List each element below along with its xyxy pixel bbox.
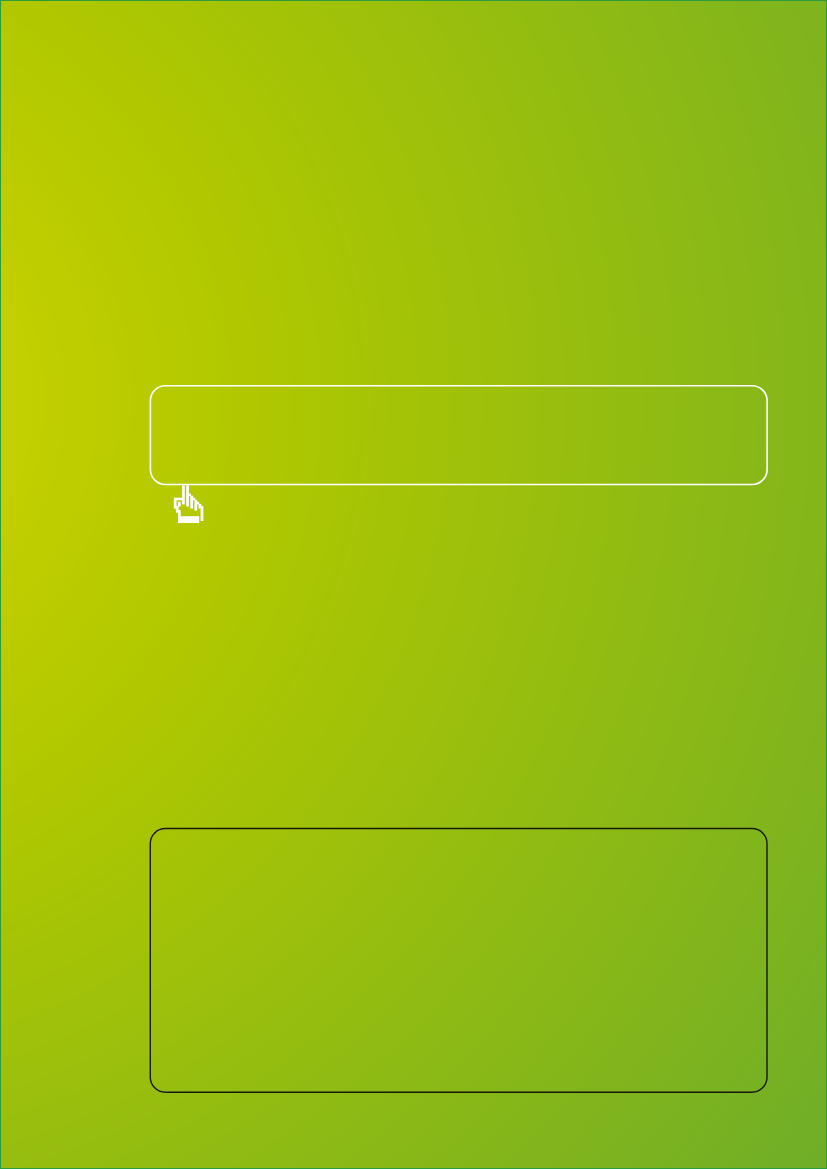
button[interactable]: Message text area <box>150 829 767 1093</box>
button[interactable]: Text field <box>150 386 767 485</box>
